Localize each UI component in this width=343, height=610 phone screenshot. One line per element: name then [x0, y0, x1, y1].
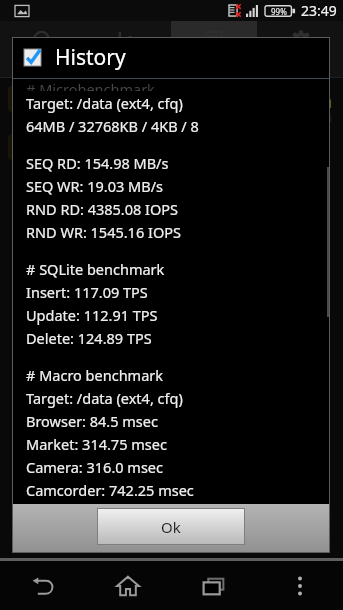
staticText: Bench — [280, 90, 333, 113]
staticText: SEQ WR: 19.03 MB/s — [26, 176, 164, 196]
button[interactable]: History — [171, 21, 257, 77]
staticText: RND RD: 4385.08 IOPS — [26, 199, 179, 219]
staticText: Camcorder: 742.25 msec — [26, 480, 194, 500]
button[interactable]: Back — [0, 561, 85, 610]
staticText: History — [55, 43, 126, 72]
staticText: History — [26, 92, 60, 106]
staticText: RND WR: 1545.16 IOPS — [26, 222, 181, 242]
staticText: Camera: 316.0 msec — [26, 457, 163, 477]
staticText: Target: /data (ext4, cfq) — [26, 388, 183, 408]
staticText: Measure — [20, 55, 65, 70]
staticText: Ok — [161, 517, 181, 537]
staticText: 23:49 — [301, 1, 337, 20]
staticText: Browser: 84.5 msec — [26, 411, 158, 431]
staticText: 64MB / 32768KB / 4KB / 8 — [26, 116, 199, 136]
staticText: Delete: 124.89 TPS — [26, 328, 152, 348]
button[interactable]: More options — [257, 561, 343, 610]
button[interactable]: Ok — [97, 508, 245, 545]
staticText: Storage Benchmarking Tool — [228, 113, 332, 124]
staticText: Update: 112.91 TPS — [26, 305, 158, 325]
staticText: Insert: 117.09 TPS — [26, 282, 148, 302]
button[interactable]: Recent apps — [171, 561, 257, 610]
button[interactable]: Measure — [0, 21, 85, 77]
button[interactable]: Setting — [257, 21, 343, 77]
staticText: Market: 314.75 msec — [26, 434, 167, 454]
button[interactable]: Results — [85, 21, 171, 77]
button[interactable]: Home — [85, 561, 171, 610]
staticText: # Microbenchmark — [26, 79, 155, 91]
staticText: SEQ RD: 154.98 MB/s — [26, 153, 169, 173]
staticText: 99% — [271, 6, 287, 17]
staticText: Results — [109, 55, 147, 70]
staticText: # Macro benchmark — [26, 365, 164, 385]
staticText: # SQLite benchmark — [26, 259, 165, 279]
staticText: Target: /data (ext4, cfq) — [26, 93, 183, 113]
